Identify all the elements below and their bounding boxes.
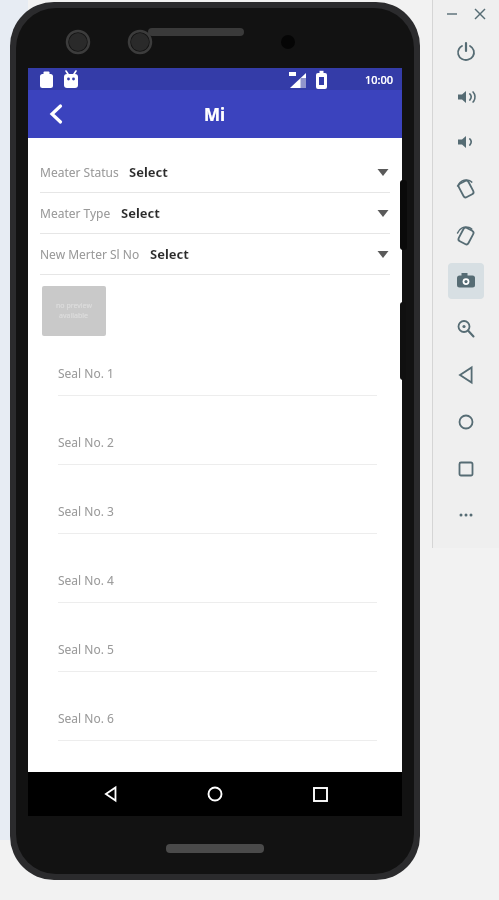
button[interactable]: More	[448, 497, 484, 533]
staticText: Select	[129, 163, 168, 181]
button[interactable]: Minimize	[442, 4, 462, 24]
button[interactable]: New Merter Sl No	[28, 234, 402, 275]
button[interactable]: Volume down	[448, 124, 484, 160]
button[interactable]: Seal No. 6	[58, 696, 377, 765]
staticText: New Merter Sl No	[40, 246, 140, 262]
staticText: Mi	[204, 103, 226, 126]
staticText: Seal No. 3	[58, 503, 114, 519]
button[interactable]: Meater Status	[28, 152, 402, 193]
staticText: available	[59, 311, 89, 321]
button[interactable]: Seal No. 3	[58, 489, 377, 558]
button[interactable]: Back	[448, 357, 484, 393]
button[interactable]: Seal No. 1	[58, 351, 377, 420]
staticText: Select	[121, 204, 160, 222]
button[interactable]: Zoom	[448, 311, 484, 347]
button[interactable]: Meter photo preview	[42, 286, 106, 336]
button[interactable]: Back	[34, 92, 78, 136]
button[interactable]: Rotate right	[448, 218, 484, 254]
staticText: Seal No. 5	[58, 641, 114, 657]
button[interactable]: Home	[193, 772, 237, 816]
staticText: Seal No. 6	[58, 710, 114, 726]
staticText: Seal No. 2	[58, 434, 114, 450]
button[interactable]: Home	[448, 404, 484, 440]
button[interactable]: Meater Type	[28, 193, 402, 234]
staticText: no preview	[56, 301, 92, 311]
button[interactable]: Volume up	[448, 79, 484, 115]
staticText: Select	[150, 245, 189, 263]
staticText: Seal No. 4	[58, 572, 114, 588]
button[interactable]: Take screenshot	[448, 263, 484, 299]
button[interactable]: Back	[89, 772, 133, 816]
button[interactable]: Recent apps	[298, 772, 342, 816]
button[interactable]: Overview	[448, 451, 484, 487]
staticText: Meater Status	[40, 164, 119, 180]
button[interactable]: Seal No. 5	[58, 627, 377, 696]
button[interactable]: Seal No. 4	[58, 558, 377, 627]
button[interactable]: Rotate left	[448, 171, 484, 207]
staticText: Meater Type	[40, 205, 111, 221]
button[interactable]: Seal No. 2	[58, 420, 377, 489]
staticText: 10:00	[365, 72, 394, 87]
button[interactable]: Power	[448, 34, 484, 70]
button[interactable]: Close	[470, 4, 490, 24]
staticText: Seal No. 1	[58, 365, 114, 381]
